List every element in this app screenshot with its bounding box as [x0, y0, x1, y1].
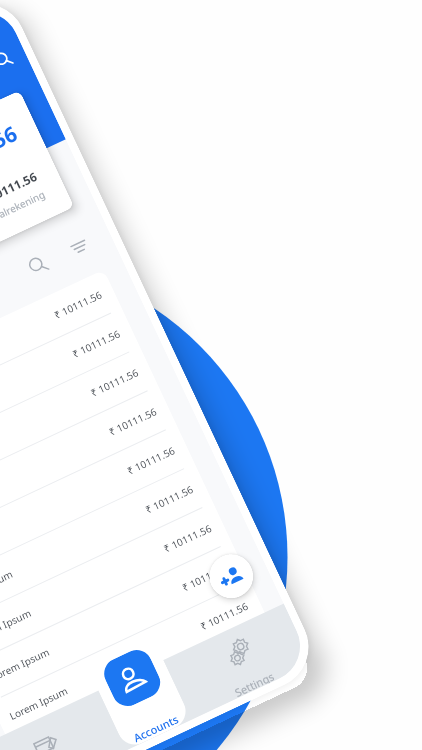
staticText: ₹ 10111.56: [125, 443, 178, 478]
button[interactable]: Lorem Ipsum: [0, 425, 195, 585]
button[interactable]: Settings: [218, 631, 261, 673]
staticText: ₹ 10111.56: [52, 287, 105, 322]
staticText: ₹ 10111.56: [0, 119, 22, 191]
button[interactable]: Search: [19, 246, 56, 284]
staticText: ₹ 10111.56: [198, 598, 251, 633]
staticText: ₹ 10111.56: [161, 521, 214, 555]
staticText: ₹ 10111.56: [70, 326, 123, 361]
staticText: ₹ 10111.56: [88, 365, 141, 400]
staticText: Lorem Ipsum: [19, 710, 77, 738]
button[interactable]: Search: [0, 37, 26, 82]
button[interactable]: [85, 633, 191, 750]
button[interactable]: Lorem Ipsum: [0, 386, 176, 546]
button[interactable]: Lorem Ipsum: [0, 308, 140, 468]
staticText: Lorem Ipsum: [0, 606, 33, 645]
staticText: Betaalrekening: [0, 187, 48, 230]
staticText: ₹ 10111.56: [210, 625, 258, 649]
button[interactable]: Lorem: [24, 722, 67, 750]
button[interactable]: ₹ 10111.56: [0, 90, 74, 329]
button[interactable]: Filter: [60, 228, 97, 265]
button[interactable]: Lorem Ipsum: [0, 347, 158, 507]
staticText: Accounts: [131, 711, 181, 745]
button[interactable]: Lorem Ipsum: [0, 464, 213, 624]
staticText: Lorem Ipsum: [0, 567, 15, 606]
button[interactable]: Accounts: [99, 645, 165, 711]
staticText: ₹ 10111.56: [0, 168, 40, 209]
staticText: Lorem Ipsum: [7, 683, 70, 723]
button[interactable]: Add account: [202, 547, 260, 605]
staticText: Settings: [232, 668, 276, 698]
button[interactable]: Lorem Ipsum: [0, 581, 268, 741]
button[interactable]: Lorem Ipsum: [8, 620, 269, 743]
button[interactable]: Lorem Ipsum: [0, 503, 231, 663]
button[interactable]: Lorem Ipsum: [0, 542, 250, 702]
staticText: ₹ 10111.56: [107, 404, 160, 439]
staticText: Lorem Ipsum: [0, 645, 52, 684]
button[interactable]: Lorem Ipsum: [0, 269, 122, 429]
staticText: ₹ 10111.56: [143, 482, 196, 517]
staticText: ₹ 10111.56: [180, 560, 233, 594]
